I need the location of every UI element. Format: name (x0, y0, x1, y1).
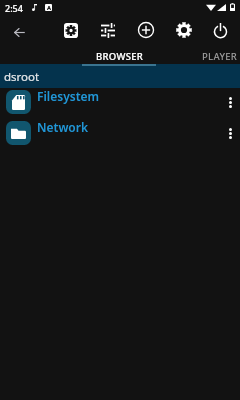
staticText: dsroot (4, 69, 40, 85)
button[interactable]: Add (131, 15, 161, 45)
button[interactable]: Network (0, 114, 240, 144)
button[interactable]: More options (222, 90, 239, 114)
button[interactable]: Settings (169, 15, 199, 45)
staticText: PLAYER (202, 50, 238, 63)
staticText: Network (37, 119, 89, 135)
button[interactable]: Back (5, 18, 33, 46)
button[interactable]: BROWSER (83, 48, 157, 64)
staticText: BROWSER (96, 50, 144, 63)
button[interactable]: Tune (93, 15, 123, 45)
button[interactable]: More options (222, 121, 239, 145)
staticText: 2:54 (5, 2, 23, 14)
button[interactable]: PLAYER (183, 48, 240, 64)
button[interactable]: Device settings (56, 15, 86, 45)
staticText: Filesystem (37, 88, 100, 104)
button[interactable]: Power (205, 15, 235, 45)
button[interactable]: Filesystem (0, 88, 240, 114)
